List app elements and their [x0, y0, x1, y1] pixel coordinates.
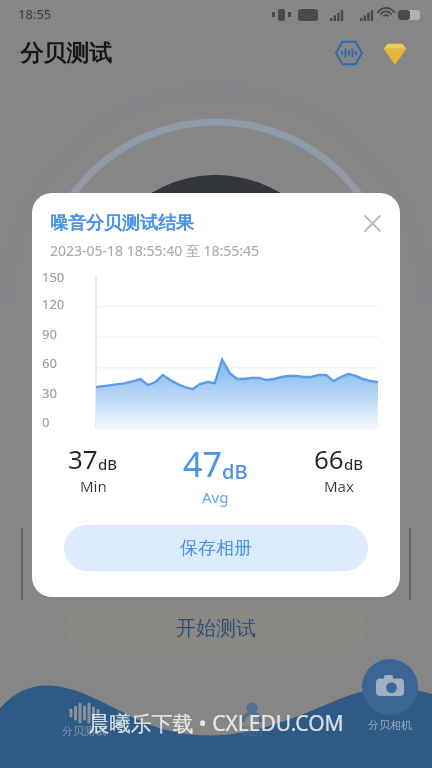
staticText: Avg: [202, 487, 229, 507]
staticText: Max: [324, 476, 354, 496]
staticText: dB: [98, 454, 118, 474]
staticText: 分贝测试: [62, 724, 106, 738]
staticText: 我的: [241, 724, 263, 738]
staticText: 30: [42, 384, 57, 402]
staticText: 2023-05-18 18:55:40 至 18:55:45: [50, 241, 260, 260]
staticText: 18:55: [18, 5, 52, 23]
button[interactable]: 分贝测试: [0, 698, 168, 768]
staticText: 分贝测试: [20, 39, 112, 68]
staticText: 开始测试: [176, 616, 256, 641]
staticText: 噪音分贝测试结果: [50, 212, 194, 235]
staticText: 90: [42, 325, 57, 343]
staticText: 66: [314, 441, 344, 476]
staticText: 120: [42, 295, 65, 313]
staticText: 47: [183, 441, 222, 487]
staticText: Min: [80, 476, 107, 496]
button[interactable]: 声音检测: [332, 36, 366, 70]
staticText: 保存相册: [180, 537, 252, 560]
button[interactable]: 关闭: [358, 209, 386, 237]
staticText: dB: [222, 458, 248, 485]
staticText: 0: [42, 413, 50, 431]
staticText: 37: [68, 441, 98, 476]
button[interactable]: 我的: [168, 698, 336, 768]
button[interactable]: 分贝相机: [362, 659, 418, 732]
staticText: dB: [344, 454, 364, 474]
staticText: 晨曦乐下载 • CXLEDU.COM: [88, 709, 344, 738]
staticText: 60: [42, 354, 57, 372]
staticText: 分贝相机: [368, 718, 412, 732]
button[interactable]: 开始测试: [66, 601, 366, 655]
button[interactable]: 会员: [378, 36, 412, 70]
button[interactable]: 保存相册: [64, 525, 368, 571]
staticText: 150: [42, 268, 65, 286]
